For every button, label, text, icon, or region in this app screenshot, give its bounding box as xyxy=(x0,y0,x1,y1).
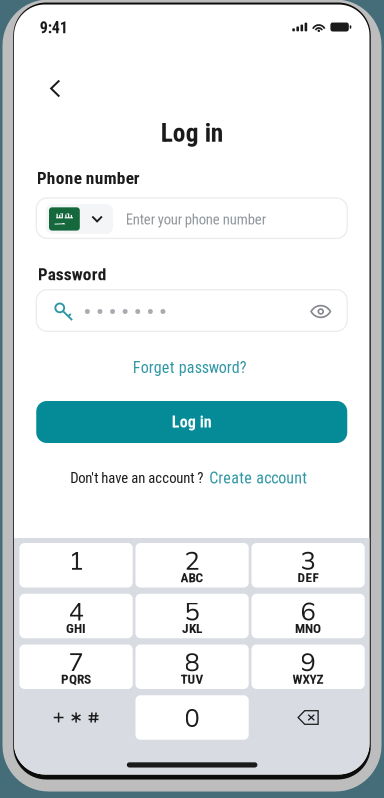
button[interactable]: 2 xyxy=(135,543,249,587)
button[interactable]: 8 xyxy=(135,644,249,689)
staticText: 3 xyxy=(301,544,316,576)
staticText: GHI xyxy=(66,621,86,636)
button[interactable]: Delete xyxy=(251,695,365,740)
staticText: Enter your phone number xyxy=(126,211,266,228)
staticText: Phone number xyxy=(37,168,140,188)
button[interactable]: Country code, Saudi Arabia xyxy=(46,204,113,234)
staticText: 9:41 xyxy=(40,19,68,37)
button[interactable]: 6 xyxy=(251,594,365,638)
button[interactable]: 0 xyxy=(135,695,249,740)
button[interactable]: 3 xyxy=(251,543,365,587)
staticText: 0 xyxy=(185,702,200,733)
button[interactable]: 4 xyxy=(19,594,133,638)
staticText: Password xyxy=(38,264,107,284)
button[interactable]: 1 xyxy=(19,543,133,587)
button[interactable]: 7 xyxy=(19,644,133,689)
staticText: 9 xyxy=(301,646,316,678)
staticText: Don't have an account ? xyxy=(70,470,203,486)
staticText: 8 xyxy=(185,646,200,678)
staticText: MNO xyxy=(295,621,321,636)
staticText: Create account xyxy=(209,469,307,487)
staticText: TUV xyxy=(181,671,204,687)
staticText: 5 xyxy=(185,595,200,627)
staticText: 6 xyxy=(301,595,316,627)
staticText: Log in xyxy=(172,413,212,431)
button[interactable]: 5 xyxy=(135,594,249,638)
staticText: PQRS xyxy=(61,671,91,687)
button[interactable]: Create account xyxy=(209,469,307,487)
button[interactable]: 9 xyxy=(251,644,365,689)
button[interactable]: Show password xyxy=(304,294,338,328)
staticText: 1 xyxy=(69,544,84,576)
button[interactable]: Symbols xyxy=(19,695,133,740)
staticText: Log in xyxy=(161,118,223,147)
staticText: 2 xyxy=(185,544,200,576)
staticText: WXYZ xyxy=(293,671,324,687)
staticText: Forget password? xyxy=(133,358,247,377)
staticText: DEF xyxy=(298,570,319,586)
staticText: 7 xyxy=(69,646,84,678)
button[interactable]: Back xyxy=(36,69,74,107)
button[interactable]: Log in xyxy=(36,401,347,443)
button[interactable]: Forget password? xyxy=(125,356,255,378)
staticText: JKL xyxy=(182,621,202,636)
staticText: ABC xyxy=(181,570,204,586)
staticText: 4 xyxy=(69,595,84,627)
